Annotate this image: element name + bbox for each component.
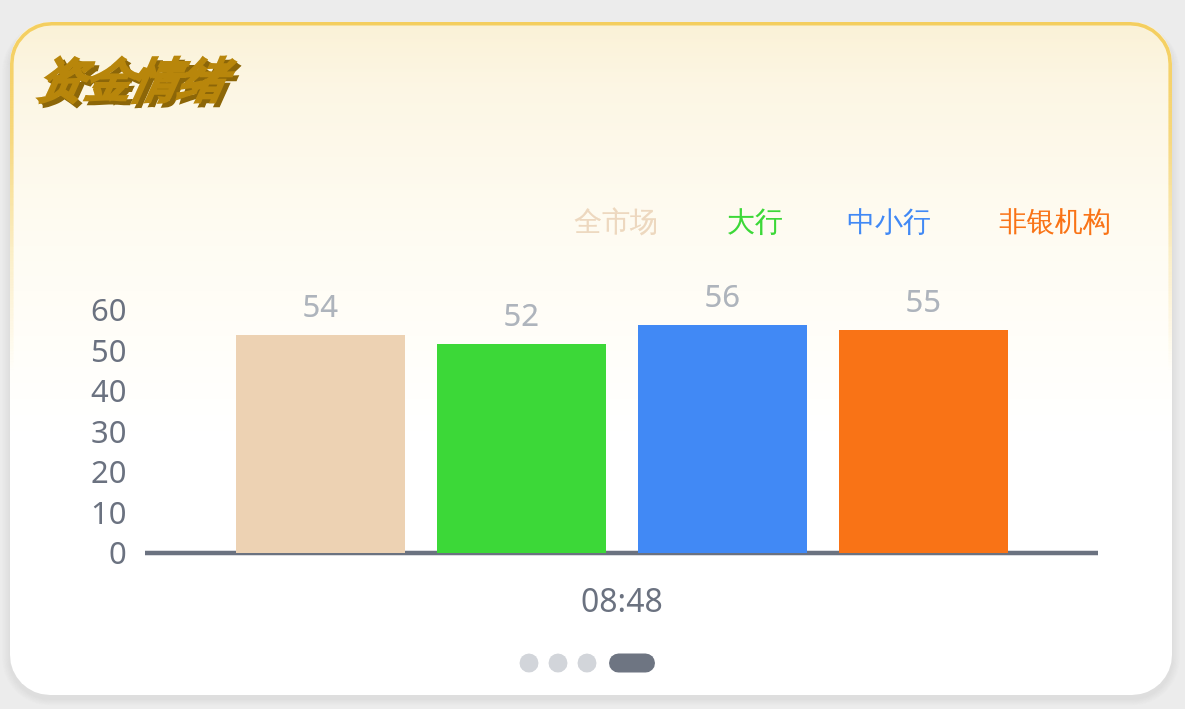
button[interactable]: 全市场 <box>571 197 665 243</box>
button[interactable]: 大行 <box>724 197 790 243</box>
button[interactable]: Page 2 <box>546 649 572 677</box>
button[interactable]: 非银机构 <box>996 197 1118 243</box>
button[interactable]: Page 4, current page <box>607 649 659 677</box>
button[interactable]: Page 1 <box>517 649 543 677</box>
button[interactable] <box>10 22 1172 695</box>
button[interactable]: Page 3 <box>575 649 601 677</box>
button[interactable]: 中小行 <box>844 197 938 243</box>
